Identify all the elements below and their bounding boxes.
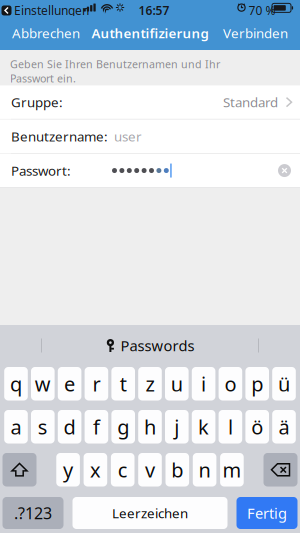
staticText: e	[64, 370, 75, 397]
staticText: Passwort:	[11, 162, 71, 179]
staticText: t	[120, 370, 127, 397]
staticText: .?123	[14, 502, 52, 524]
staticText: Leerzeichen	[112, 504, 188, 522]
staticText: x	[90, 456, 101, 483]
staticText: f	[93, 413, 100, 440]
staticText: i	[201, 370, 206, 397]
button[interactable]: n	[193, 453, 216, 486]
button[interactable]: k	[192, 410, 215, 443]
staticText: s	[38, 413, 48, 440]
button[interactable]: z	[138, 367, 162, 400]
button[interactable]: Fertig	[236, 497, 297, 529]
staticText: b	[171, 456, 183, 483]
staticText: Geben Sie Ihren Benutzernamen und Ihr Pa…	[10, 57, 220, 85]
button[interactable]: Leerzeichen	[72, 497, 227, 529]
button[interactable]: i	[192, 367, 215, 400]
staticText: 16:57	[138, 2, 169, 18]
staticText: Abbrechen	[12, 24, 80, 42]
button[interactable]: l	[219, 410, 242, 443]
staticText: Einstellungen	[14, 2, 89, 18]
staticText: Passwords	[120, 336, 194, 355]
button[interactable]: t	[111, 367, 135, 400]
staticText: user	[114, 127, 142, 145]
button[interactable]: ü	[272, 367, 296, 400]
staticText: w	[35, 370, 51, 397]
staticText: k	[198, 413, 209, 440]
button[interactable]: Abbrechen	[8, 18, 84, 48]
button[interactable]: j	[165, 410, 189, 443]
button[interactable]: r	[85, 367, 108, 400]
staticText: o	[224, 370, 236, 397]
button[interactable]: Verbinden	[219, 18, 292, 48]
button[interactable]: c	[111, 453, 134, 486]
button[interactable]: ä	[272, 410, 296, 443]
staticText: ä	[278, 413, 289, 440]
staticText: g	[117, 413, 129, 440]
staticText: j	[174, 413, 179, 440]
button[interactable]: y	[56, 453, 80, 486]
button[interactable]: d	[58, 410, 81, 443]
staticText: d	[64, 413, 76, 440]
staticText: a	[10, 413, 21, 440]
staticText: m	[222, 456, 241, 483]
button[interactable]: Gruppe:	[0, 85, 300, 119]
button[interactable]: b	[165, 453, 189, 486]
staticText: ü	[278, 370, 290, 397]
staticText: z	[145, 370, 154, 397]
button[interactable]: o	[219, 367, 242, 400]
staticText: y	[63, 456, 73, 483]
staticText: h	[144, 413, 156, 440]
staticText: Verbinden	[223, 24, 288, 42]
staticText: Benutzername:	[11, 127, 108, 145]
button[interactable]: x	[84, 453, 107, 486]
staticText: c	[118, 456, 128, 483]
button[interactable]: p	[245, 367, 269, 400]
button[interactable]: m	[220, 453, 244, 486]
staticText: p	[251, 370, 263, 397]
staticText: 70 %	[248, 2, 275, 18]
staticText: q	[10, 370, 22, 397]
button[interactable]: Delete	[263, 453, 297, 486]
button[interactable]: w	[31, 367, 55, 400]
staticText: Authentifizierung	[91, 24, 208, 42]
button[interactable]: a	[4, 410, 28, 443]
button[interactable]: h	[138, 410, 162, 443]
button[interactable]: v	[138, 453, 162, 486]
staticText: Fertig	[247, 503, 287, 523]
staticText: Standard	[223, 93, 278, 111]
button[interactable]: Passwords	[99, 332, 200, 359]
staticText: ö	[251, 413, 263, 440]
staticText: r	[92, 370, 100, 397]
button[interactable]: ö	[245, 410, 269, 443]
button[interactable]: .?123	[2, 497, 63, 529]
button[interactable]: Shift	[2, 453, 36, 486]
staticText: n	[199, 456, 211, 483]
button[interactable]: e	[58, 367, 81, 400]
staticText: u	[171, 370, 183, 397]
button[interactable]: Back to Einstellungen	[1, 2, 89, 18]
button[interactable]: f	[85, 410, 108, 443]
button[interactable]: s	[31, 410, 55, 443]
staticText: l	[228, 413, 233, 440]
button[interactable]: q	[4, 367, 28, 400]
staticText: v	[145, 456, 155, 483]
staticText: Gruppe:	[11, 93, 63, 111]
button[interactable]: g	[111, 410, 135, 443]
button[interactable]: u	[165, 367, 189, 400]
